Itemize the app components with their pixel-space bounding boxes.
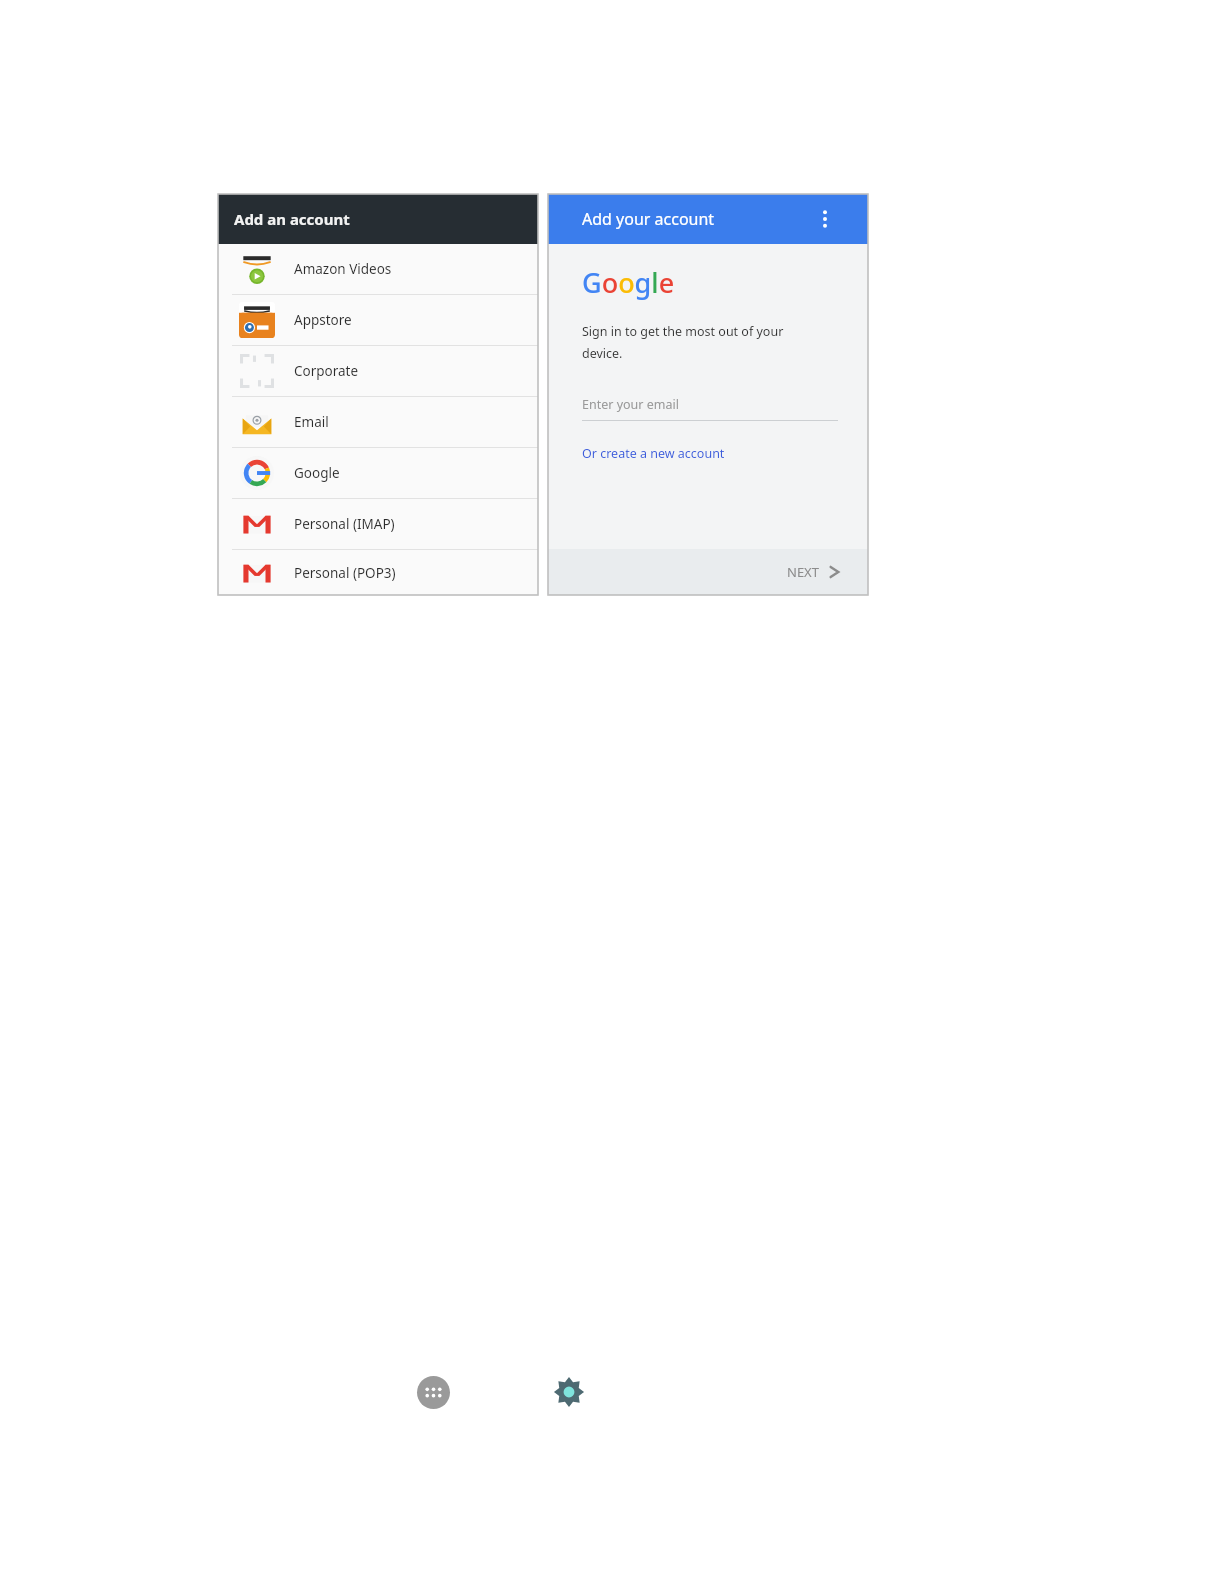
button[interactable]: Google [218,448,538,498]
staticText: Corporate [294,362,359,380]
button[interactable]: More options [812,206,838,232]
button[interactable]: Personal (IMAP) [218,499,538,549]
staticText: Appstore [294,311,352,329]
staticText: Google [294,464,340,482]
button[interactable]: Settings [551,1374,587,1410]
staticText: Enter your email [582,396,679,413]
staticText: Or create a new account [582,445,725,462]
button[interactable]: NEXT [781,557,846,587]
staticText: Amazon Videos [294,260,392,278]
staticText: NEXT [787,563,819,581]
button[interactable]: Add an account [218,194,538,244]
staticText: Email [294,413,329,431]
button[interactable]: Amazon Videos [218,244,538,294]
staticText: Add your account [582,208,715,230]
staticText: Google [582,264,675,301]
staticText: Add an account [234,209,350,229]
staticText: Sign in to get the most out of your [582,323,784,340]
button[interactable]: Appstore [218,295,538,345]
button[interactable]: Email [218,397,538,447]
button[interactable]: Or create a new account [582,445,725,462]
staticText: Personal (POP3) [294,564,396,582]
button[interactable]: Enter your email [582,396,838,421]
button[interactable]: Personal (POP3) [218,550,538,595]
button[interactable]: Apps [415,1374,451,1410]
staticText: Personal (IMAP) [294,515,395,533]
button[interactable]: Corporate [218,346,538,396]
staticText: device. [582,345,623,362]
